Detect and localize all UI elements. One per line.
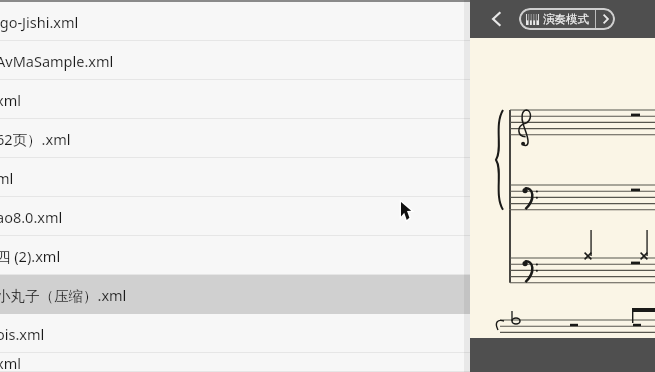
- button[interactable]: 演奏模式: [519, 8, 615, 30]
- button[interactable]: ois.xml: [0, 314, 470, 353]
- button[interactable]: Next: [596, 8, 615, 30]
- staticText: xml: [0, 90, 21, 110]
- staticText: xml: [0, 353, 21, 372]
- button[interactable]: AvMaSample.xml: [0, 41, 470, 80]
- button[interactable]: ml: [0, 158, 470, 197]
- staticText: 演奏模式: [543, 12, 589, 26]
- button[interactable]: xml: [0, 80, 470, 119]
- staticText: igo-Jishi.xml: [0, 12, 79, 32]
- staticText: ois.xml: [0, 324, 45, 344]
- staticText: AvMaSample.xml: [0, 51, 114, 71]
- staticText: ml: [0, 168, 14, 188]
- button[interactable]: Back: [483, 5, 511, 33]
- button[interactable]: xml: [0, 353, 470, 372]
- button[interactable]: 四 (2).xml: [0, 236, 470, 275]
- button[interactable]: ao8.0.xml: [0, 197, 470, 236]
- staticText: 62页）.xml: [0, 129, 71, 149]
- staticText: 四 (2).xml: [0, 246, 61, 266]
- button[interactable]: 小丸子（压缩）.xml: [0, 275, 470, 314]
- button[interactable]: igo-Jishi.xml: [0, 2, 470, 41]
- button[interactable]: 62页）.xml: [0, 119, 470, 158]
- staticText: ao8.0.xml: [0, 207, 63, 227]
- staticText: 小丸子（压缩）.xml: [0, 285, 127, 305]
